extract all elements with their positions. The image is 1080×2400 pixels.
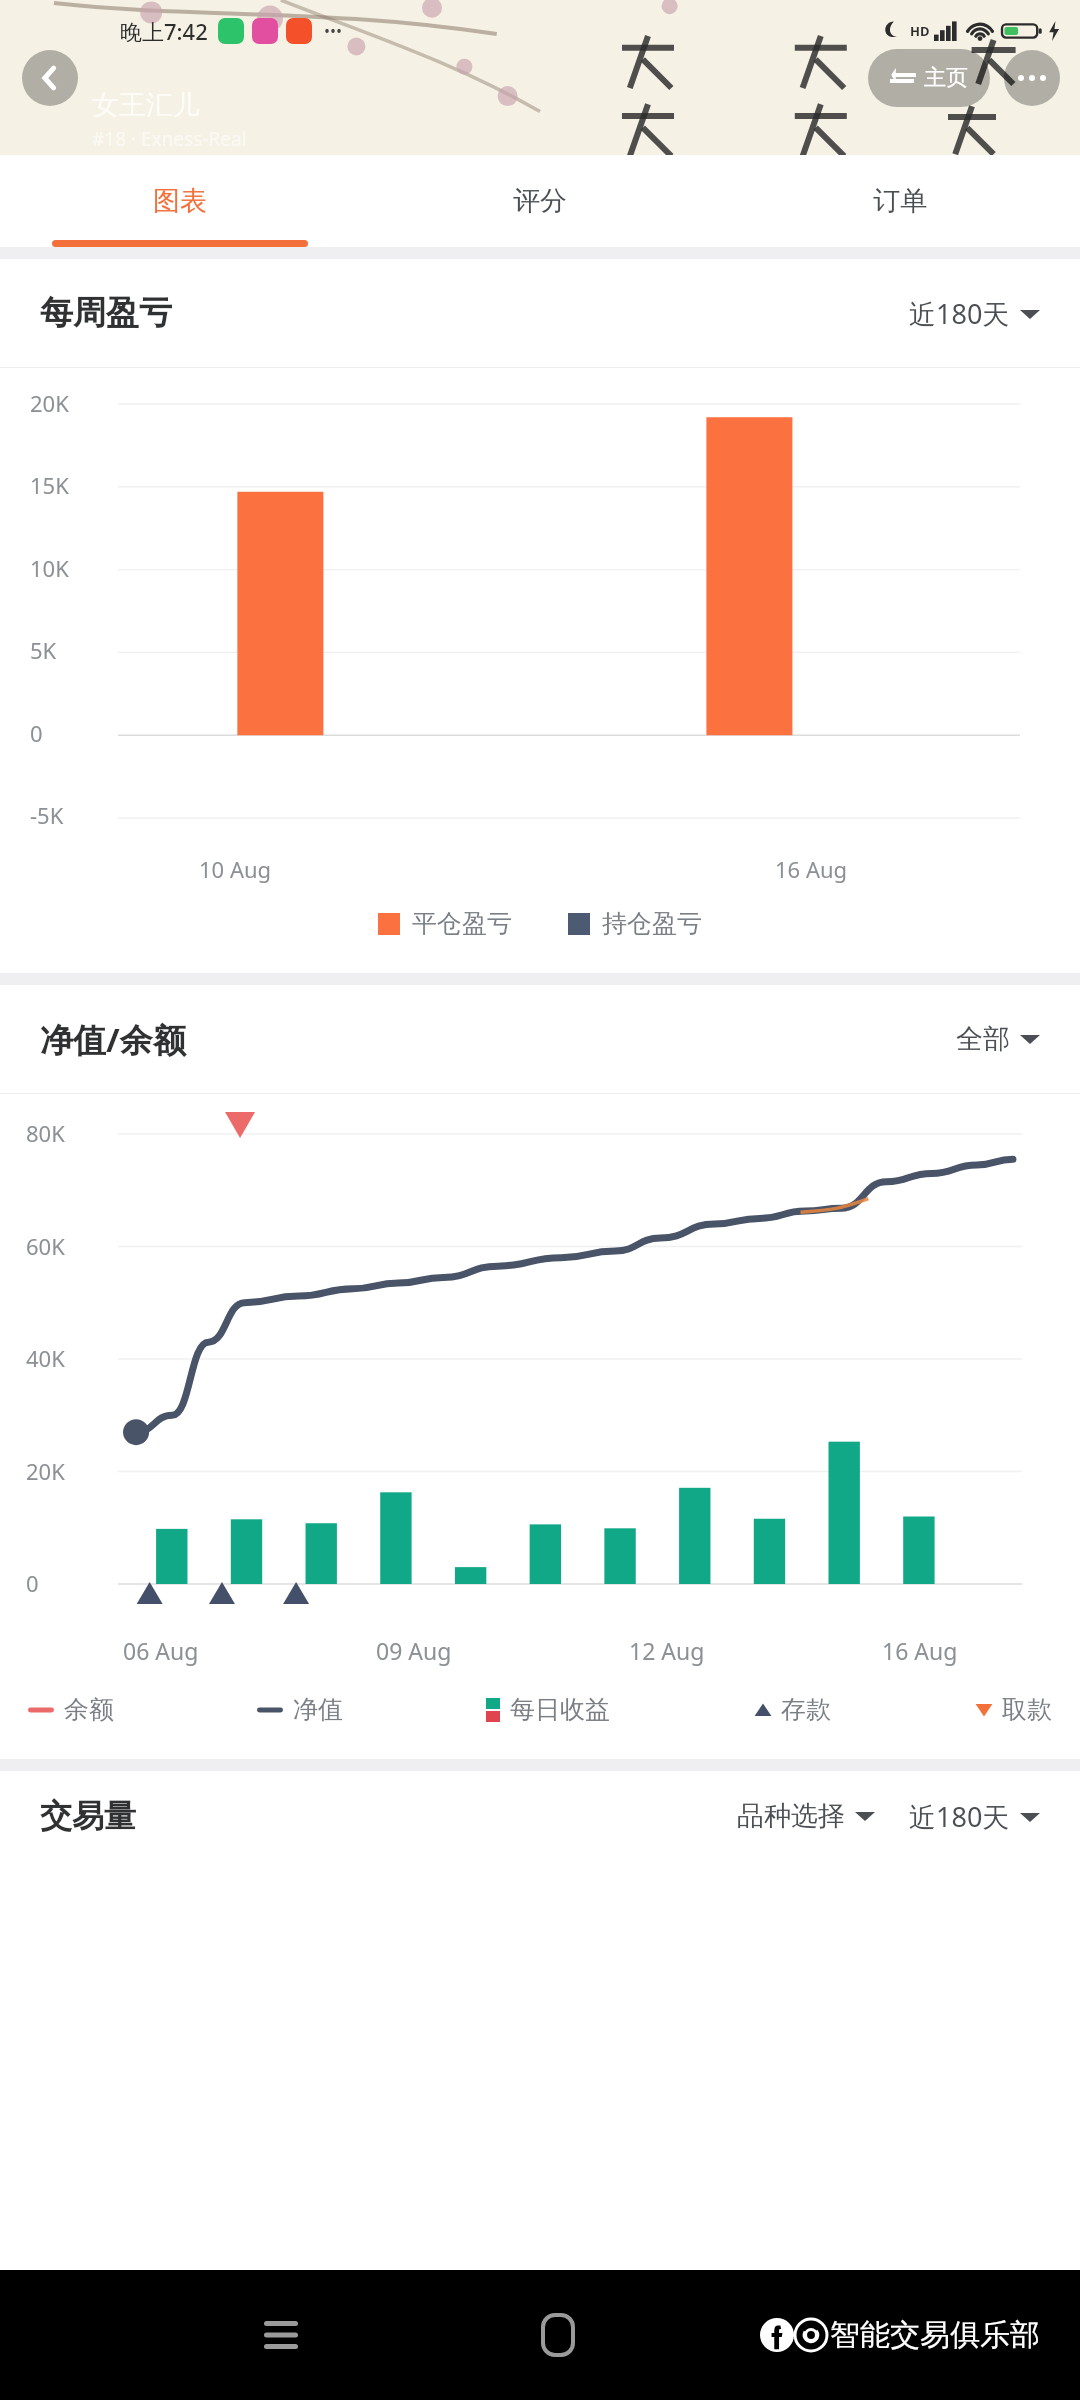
button[interactable]: 平仓盈亏: [378, 908, 512, 939]
button[interactable]: Recent apps: [246, 2300, 316, 2370]
staticText: 净值: [293, 1694, 343, 1725]
button[interactable]: 主页: [868, 49, 990, 107]
staticText: -5K: [30, 800, 64, 830]
staticText: 每周盈亏: [40, 292, 172, 334]
staticText: 06 Aug: [123, 1635, 199, 1666]
staticText: #18 · Exness-Real: [92, 126, 247, 152]
staticText: 品种选择: [737, 1799, 845, 1833]
button[interactable]: 订单: [720, 155, 1080, 247]
staticText: 20K: [26, 1456, 65, 1486]
staticText: 评分: [513, 184, 567, 218]
button[interactable]: 取款: [974, 1694, 1052, 1725]
staticText: 16 Aug: [775, 854, 848, 884]
staticText: 16 Aug: [882, 1635, 958, 1666]
staticText: 5K: [30, 635, 57, 665]
button[interactable]: 持仓盈亏: [568, 908, 702, 939]
button[interactable]: 评分: [360, 155, 720, 247]
staticText: 女王汇儿: [92, 88, 200, 122]
button[interactable]: 全部: [956, 1022, 1040, 1056]
button[interactable]: Back: [22, 50, 78, 106]
staticText: 图表: [153, 184, 207, 218]
button[interactable]: 净值: [257, 1694, 343, 1725]
button[interactable]: 每日收益: [486, 1694, 610, 1725]
staticText: 每日收益: [510, 1694, 610, 1725]
staticText: 存款: [781, 1694, 831, 1725]
staticText: •••: [324, 20, 343, 42]
staticText: HD: [910, 22, 930, 40]
staticText: 0: [26, 1568, 39, 1598]
button[interactable]: More options: [1004, 50, 1060, 106]
staticText: 40K: [26, 1343, 65, 1373]
staticText: 近180天: [909, 295, 1010, 332]
staticText: 主页: [924, 64, 968, 92]
staticText: 全部: [956, 1022, 1010, 1056]
staticText: 平仓盈亏: [412, 908, 512, 939]
staticText: 近180天: [909, 1798, 1010, 1835]
button[interactable]: 存款: [753, 1694, 831, 1725]
staticText: 订单: [873, 184, 927, 218]
button[interactable]: 余额: [28, 1694, 114, 1725]
staticText: 智能交易俱乐部: [830, 2316, 1040, 2354]
staticText: 交易量: [40, 1796, 136, 1836]
staticText: 15K: [30, 470, 69, 500]
staticText: 持仓盈亏: [602, 908, 702, 939]
staticText: 余额: [64, 1694, 114, 1725]
button[interactable]: 近180天: [909, 295, 1040, 332]
staticText: 取款: [1002, 1694, 1052, 1725]
staticText: 10K: [30, 553, 69, 583]
staticText: 20K: [30, 388, 69, 418]
staticText: 12 Aug: [629, 1635, 705, 1666]
button[interactable]: 近180天: [909, 1798, 1040, 1835]
staticText: 晚上7:42: [120, 16, 208, 46]
staticText: 60K: [26, 1231, 65, 1261]
button[interactable]: 图表: [0, 155, 360, 247]
staticText: 09 Aug: [376, 1635, 452, 1666]
button[interactable]: 品种选择: [737, 1799, 875, 1833]
button[interactable]: Home: [523, 2300, 593, 2370]
staticText: 80K: [26, 1118, 65, 1148]
staticText: 净值/余额: [40, 1017, 186, 1062]
staticText: 10 Aug: [199, 854, 272, 884]
staticText: 0: [30, 718, 43, 748]
